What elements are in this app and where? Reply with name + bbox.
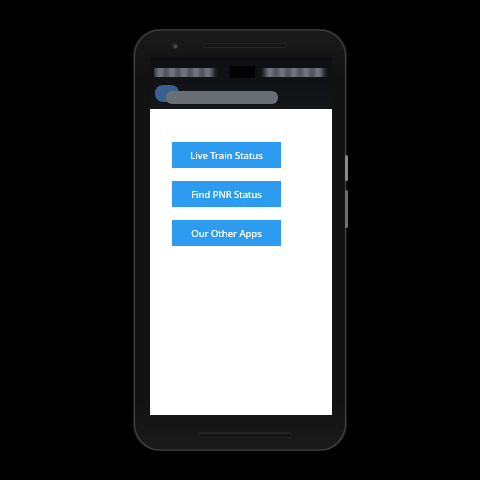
staticText: Live Train Status (190, 149, 263, 162)
other: Power (345, 155, 348, 181)
button[interactable]: Live Train Status (172, 142, 281, 168)
other: Volume (345, 190, 348, 228)
button[interactable]: Find PNR Status (172, 181, 281, 207)
button[interactable]: Our Other Apps (172, 220, 281, 246)
staticText: Our Other Apps (191, 227, 262, 240)
staticText: Find PNR Status (191, 188, 262, 201)
